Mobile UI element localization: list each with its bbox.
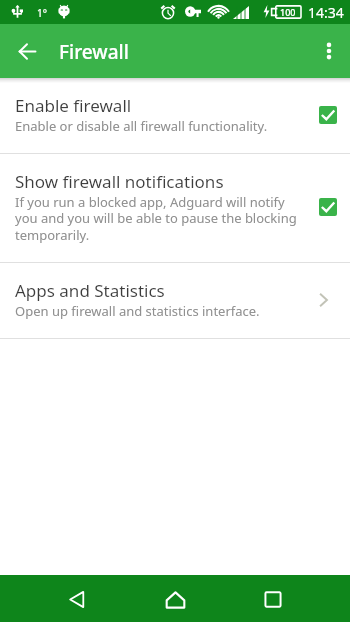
staticText: Firewall [59,39,129,65]
button[interactable]: Enable firewall [0,78,350,153]
button[interactable]: Recents [249,576,297,622]
button[interactable]: Apps and Statistics [0,263,350,338]
button[interactable]: More options [308,24,350,78]
staticText: 1° [37,6,47,20]
button[interactable]: Show firewall notifications [0,154,350,262]
button[interactable]: Back [53,576,101,622]
staticText: If you run a blocked app, Adguard will n… [15,193,310,244]
staticText: 100 [280,6,296,18]
staticText: Show firewall notifications [15,170,224,193]
staticText: Enable firewall [15,94,132,117]
staticText: Enable or disable all firewall functiona… [15,117,268,135]
button[interactable]: Back [0,24,54,78]
staticText: 14:34 [308,3,344,22]
staticText: Open up firewall and statistics interfac… [15,302,260,320]
staticText: Apps and Statistics [15,279,165,302]
button[interactable]: Home [151,576,199,622]
